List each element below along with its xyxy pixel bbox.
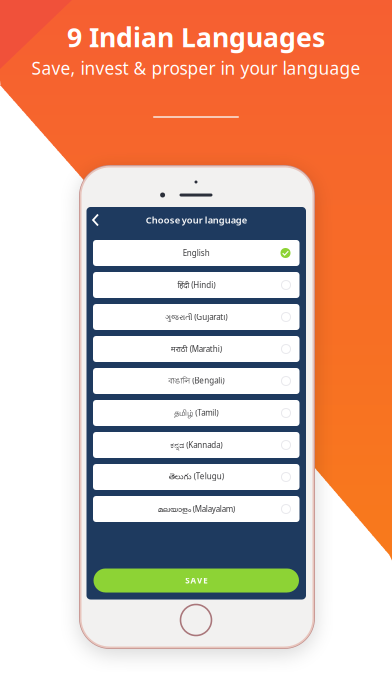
button[interactable]: ગુજરાતી (Gujarati) — [93, 304, 299, 330]
staticText: മലയാളം (Malayalam) — [158, 504, 235, 514]
staticText: বাঙালি (Bengali) — [168, 375, 224, 387]
staticText: Choose your language — [146, 214, 247, 226]
staticText: English — [183, 248, 210, 258]
button[interactable]: বাঙালি (Bengali) — [93, 368, 299, 394]
staticText: SAVE — [185, 575, 207, 586]
button[interactable]: SAVE — [93, 568, 299, 592]
button[interactable]: ಕನ್ನಡ (Kannada) — [93, 432, 299, 458]
staticText: Save, invest & prosper in your language — [31, 56, 360, 79]
staticText: हिंदी (Hindi) — [177, 280, 215, 290]
staticText: मराठी (Marathi) — [171, 344, 222, 354]
staticText: తెలుగు (Telugu) — [169, 471, 224, 483]
staticText: ಕನ್ನಡ (Kannada) — [170, 440, 222, 450]
button[interactable]: తెలుగు (Telugu) — [93, 464, 299, 490]
button[interactable]: मराठी (Marathi) — [93, 336, 299, 362]
button[interactable]: தமிழ் (Tamil) — [93, 400, 299, 426]
button[interactable]: മലയാളം (Malayalam) — [93, 496, 299, 522]
button[interactable]: Back — [86, 207, 106, 233]
staticText: ગુજરાતી (Gujarati) — [165, 312, 227, 322]
button[interactable]: हिंदी (Hindi) — [93, 272, 299, 298]
button[interactable]: English — [93, 240, 299, 266]
staticText: தமிழ் (Tamil) — [174, 407, 218, 419]
staticText: 9 Indian Languages — [67, 19, 325, 55]
